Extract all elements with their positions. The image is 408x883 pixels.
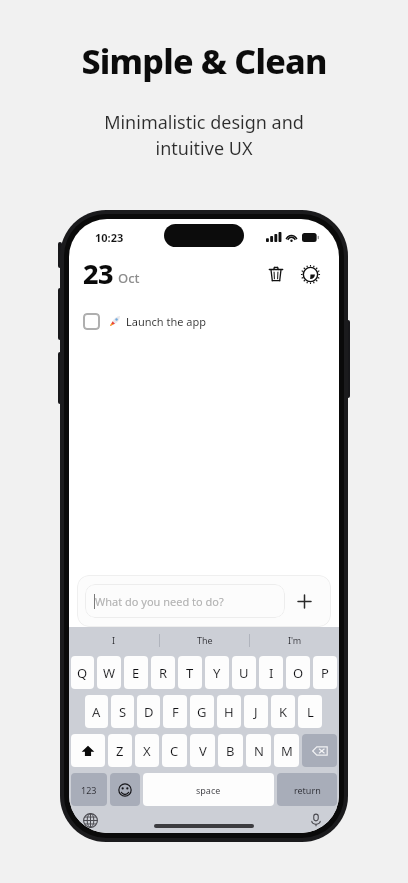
- staticText: The: [197, 634, 213, 646]
- button[interactable]: P: [313, 656, 337, 689]
- button[interactable]: Q: [71, 656, 94, 689]
- button[interactable]: E: [124, 656, 148, 689]
- button[interactable]: Backspace: [302, 734, 337, 767]
- staticText: Z: [116, 742, 124, 760]
- button[interactable]: K: [271, 695, 295, 728]
- button[interactable]: F: [163, 695, 187, 728]
- button[interactable]: C: [162, 734, 187, 767]
- staticText: I'm: [288, 634, 302, 646]
- staticText: X: [143, 742, 151, 760]
- staticText: A: [92, 703, 101, 721]
- staticText: S: [119, 703, 127, 721]
- button[interactable]: T: [178, 656, 202, 689]
- button[interactable]: space: [143, 773, 274, 806]
- button[interactable]: Shift: [71, 734, 105, 767]
- staticText: return: [294, 784, 321, 796]
- staticText: Minimalistic design and intuitive UX: [104, 110, 304, 161]
- button[interactable]: G: [190, 695, 214, 728]
- button[interactable]: Delete: [263, 261, 289, 287]
- button[interactable]: R: [151, 656, 175, 689]
- staticText: space: [196, 784, 221, 796]
- button[interactable]: Launch the app: [69, 306, 339, 336]
- staticText: E: [132, 664, 140, 682]
- button[interactable]: A: [85, 695, 108, 728]
- staticText: G: [197, 703, 207, 721]
- button[interactable]: H: [217, 695, 241, 728]
- button[interactable]: X: [135, 734, 159, 767]
- staticText: M: [281, 742, 293, 760]
- button[interactable]: Y: [205, 656, 229, 689]
- button[interactable]: Dictation: [303, 807, 329, 833]
- button[interactable]: V: [190, 734, 215, 767]
- button[interactable]: D: [137, 695, 160, 728]
- button[interactable]: Settings: [297, 261, 323, 287]
- staticText: 10:23: [95, 230, 124, 245]
- button[interactable]: Z: [108, 734, 132, 767]
- button[interactable]: I: [69, 627, 159, 653]
- button[interactable]: Emoji: [110, 773, 140, 806]
- staticText: Y: [213, 664, 221, 682]
- button[interactable]: What do you need to do?: [85, 584, 285, 618]
- button[interactable]: U: [232, 656, 256, 689]
- staticText: F: [172, 703, 179, 721]
- staticText: 123: [81, 784, 97, 796]
- staticText: V: [199, 742, 207, 760]
- staticText: Q: [77, 664, 88, 682]
- button[interactable]: return: [277, 773, 337, 806]
- staticText: H: [224, 703, 234, 721]
- button[interactable]: B: [218, 734, 243, 767]
- button[interactable]: S: [111, 695, 134, 728]
- button[interactable]: N: [246, 734, 271, 767]
- staticText: Launch the app: [126, 314, 207, 329]
- button[interactable]: I: [259, 656, 283, 689]
- button[interactable]: I'm: [250, 627, 339, 653]
- staticText: P: [321, 664, 329, 682]
- staticText: B: [226, 742, 235, 760]
- button[interactable]: O: [286, 656, 310, 689]
- button[interactable]: The: [160, 627, 249, 653]
- staticText: I: [269, 664, 274, 682]
- staticText: 23: [83, 255, 114, 292]
- staticText: L: [307, 703, 314, 721]
- staticText: K: [279, 703, 288, 721]
- button[interactable]: J: [244, 695, 268, 728]
- staticText: I: [112, 634, 116, 646]
- staticText: Oct: [118, 269, 140, 287]
- staticText: D: [144, 703, 154, 721]
- staticText: C: [170, 742, 179, 760]
- staticText: What do you need to do?: [95, 594, 224, 609]
- button[interactable]: W: [97, 656, 121, 689]
- staticText: N: [254, 742, 264, 760]
- staticText: T: [186, 664, 194, 682]
- staticText: W: [103, 664, 116, 682]
- button[interactable]: Change keyboard: [77, 807, 103, 833]
- staticText: R: [159, 664, 168, 682]
- staticText: O: [293, 664, 304, 682]
- staticText: J: [254, 703, 258, 721]
- button[interactable]: L: [298, 695, 322, 728]
- staticText: U: [239, 664, 249, 682]
- button[interactable]: M: [274, 734, 299, 767]
- staticText: Simple & Clean: [81, 38, 327, 84]
- button[interactable]: Add task: [285, 575, 323, 627]
- button[interactable]: 123: [71, 773, 107, 806]
